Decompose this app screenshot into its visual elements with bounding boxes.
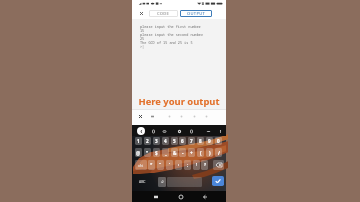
button[interactable]: ABC <box>135 176 149 187</box>
staticText: Here your output <box>132 95 226 108</box>
staticText: 6 <box>181 138 184 144</box>
button[interactable]: - <box>179 148 186 157</box>
button[interactable]: 9 <box>206 137 213 145</box>
button[interactable]: Back <box>137 127 145 135</box>
button[interactable]: CODE <box>149 10 178 17</box>
staticText: 3 <box>155 138 158 144</box>
staticText: @ <box>136 150 141 156</box>
button[interactable]: More <box>202 112 210 120</box>
button[interactable]: " <box>144 148 151 157</box>
staticText: OUTPUT <box>187 11 206 17</box>
staticText: 4 <box>164 138 167 144</box>
button[interactable]: / <box>215 148 222 157</box>
button[interactable]: 0 <box>215 137 222 145</box>
staticText: " <box>146 150 149 156</box>
staticText: 8 <box>199 138 202 144</box>
staticText: $ <box>155 150 158 156</box>
staticText: ; <box>187 162 189 168</box>
staticText: 5 <box>173 138 176 144</box>
button[interactable]: ! <box>193 160 200 170</box>
staticText: * <box>150 162 153 168</box>
button[interactable]: Run <box>190 112 198 120</box>
button[interactable]: Backspace <box>213 160 224 170</box>
button[interactable]: More symbols <box>135 160 147 170</box>
button[interactable]: Home <box>176 192 185 201</box>
staticText: ) <box>209 150 211 156</box>
button[interactable]: GIF <box>160 127 168 135</box>
staticText: ? <box>204 162 206 168</box>
button[interactable]: _ <box>162 148 169 157</box>
button[interactable]: Back <box>200 192 209 201</box>
button[interactable]: ? <box>201 160 208 170</box>
staticText: / <box>218 150 220 156</box>
button[interactable]: Stickers <box>187 127 195 135</box>
staticText: ( <box>200 150 202 156</box>
button[interactable]: 8 <box>197 137 204 145</box>
button[interactable]: $ <box>153 148 160 157</box>
staticText: ABC <box>139 179 146 184</box>
staticText: =\< <box>138 163 144 168</box>
button[interactable]: ( <box>197 148 204 157</box>
button[interactable]: Undo <box>165 112 173 120</box>
button[interactable]: & <box>171 148 178 157</box>
button[interactable]: Redo <box>177 112 185 120</box>
staticText: 9 <box>208 138 211 144</box>
button[interactable]: Settings <box>175 127 183 135</box>
button[interactable]: 1 <box>135 137 142 145</box>
staticText: - <box>182 150 184 156</box>
staticText: 7 <box>190 138 193 144</box>
button[interactable]: Clipboard <box>149 127 157 135</box>
button[interactable]: Tab <box>148 112 156 120</box>
button[interactable]: : <box>175 160 182 170</box>
staticText: : <box>178 162 180 168</box>
staticText: ! <box>196 162 198 168</box>
staticText: 1 <box>137 138 140 144</box>
button[interactable]: Emoji <box>158 177 166 187</box>
button[interactable]: More options <box>204 127 212 135</box>
button[interactable]: Voice input <box>216 127 224 135</box>
button[interactable]: Close keyboard <box>136 112 144 120</box>
staticText: + <box>190 150 193 156</box>
button[interactable]: Recents <box>151 192 160 201</box>
staticText: ' <box>169 162 171 168</box>
staticText: _ <box>165 150 167 156</box>
staticText: " <box>159 162 162 168</box>
button[interactable]: Space <box>167 177 202 187</box>
button[interactable]: Enter <box>212 176 224 186</box>
button[interactable]: * <box>148 160 155 170</box>
button[interactable]: OUTPUT <box>180 10 212 17</box>
button[interactable]: 2 <box>144 137 151 145</box>
button[interactable]: 7 <box>188 137 195 145</box>
staticText: 0 <box>217 138 220 144</box>
button[interactable]: ' <box>166 160 173 170</box>
button[interactable]: 6 <box>179 137 186 145</box>
button[interactable]: + <box>188 148 195 157</box>
staticText: please input the first number 15 please … <box>140 24 203 49</box>
staticText: 2 <box>146 138 149 144</box>
button[interactable]: @ <box>135 148 142 157</box>
button[interactable]: ; <box>184 160 191 170</box>
button[interactable]: " <box>157 160 164 170</box>
button[interactable]: 5 <box>171 137 178 145</box>
button[interactable]: Close <box>137 9 146 18</box>
staticText: & <box>173 150 177 156</box>
staticText: CODE <box>157 11 170 17</box>
staticText: :-) <box>161 180 164 184</box>
button[interactable]: 3 <box>153 137 160 145</box>
button[interactable]: 4 <box>162 137 169 145</box>
button[interactable]: ) <box>206 148 213 157</box>
